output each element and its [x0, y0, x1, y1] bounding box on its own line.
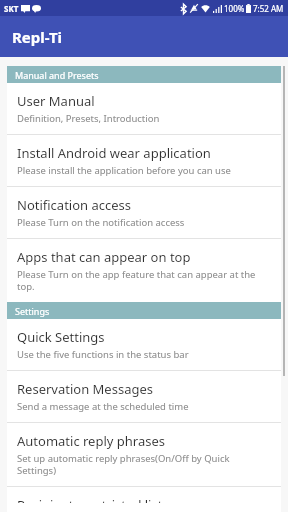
button[interactable]: Install Android wear application	[7, 135, 281, 187]
button[interactable]: Apps that can appear on top	[7, 239, 281, 302]
staticText: Send a message at the scheduled time	[17, 400, 189, 413]
staticText: Settings	[15, 305, 50, 317]
button[interactable]: User Manual	[7, 83, 281, 135]
staticText: Use the five functions in the status bar	[17, 348, 189, 361]
staticText: Please Turn on the notification access	[17, 216, 185, 229]
staticText: 7:52 AM	[253, 3, 284, 14]
staticText: 100%	[224, 3, 245, 14]
button[interactable]: Reservation Messages	[7, 371, 281, 423]
staticText: Set up automatic reply phrases(On/Off by…	[17, 452, 267, 477]
staticText: Install Android wear application	[17, 144, 211, 162]
staticText: Please install the application before yo…	[17, 164, 231, 177]
staticText: Please Turn on the app feature that can …	[17, 268, 267, 293]
button[interactable]: Quick Settings	[7, 319, 281, 371]
staticText: Quick Settings	[17, 328, 105, 346]
staticText: Recipients restricted list	[17, 496, 163, 503]
staticText: Definition, Presets, Introduction	[17, 112, 160, 125]
staticText: Reservation Messages	[17, 380, 153, 398]
staticText: Apps that can appear on top	[17, 248, 191, 266]
staticText: Manual and Presets	[15, 69, 99, 81]
staticText: Notification access	[17, 196, 132, 214]
staticText: Automatic reply phrases	[17, 432, 166, 450]
button[interactable]: Recipients restricted list	[7, 487, 281, 512]
staticText: User Manual	[17, 92, 95, 110]
button[interactable]: Notification access	[7, 187, 281, 239]
staticText: Repl-Ti	[12, 27, 63, 47]
staticText: SKT	[4, 3, 19, 14]
button[interactable]: Automatic reply phrases	[7, 423, 281, 487]
